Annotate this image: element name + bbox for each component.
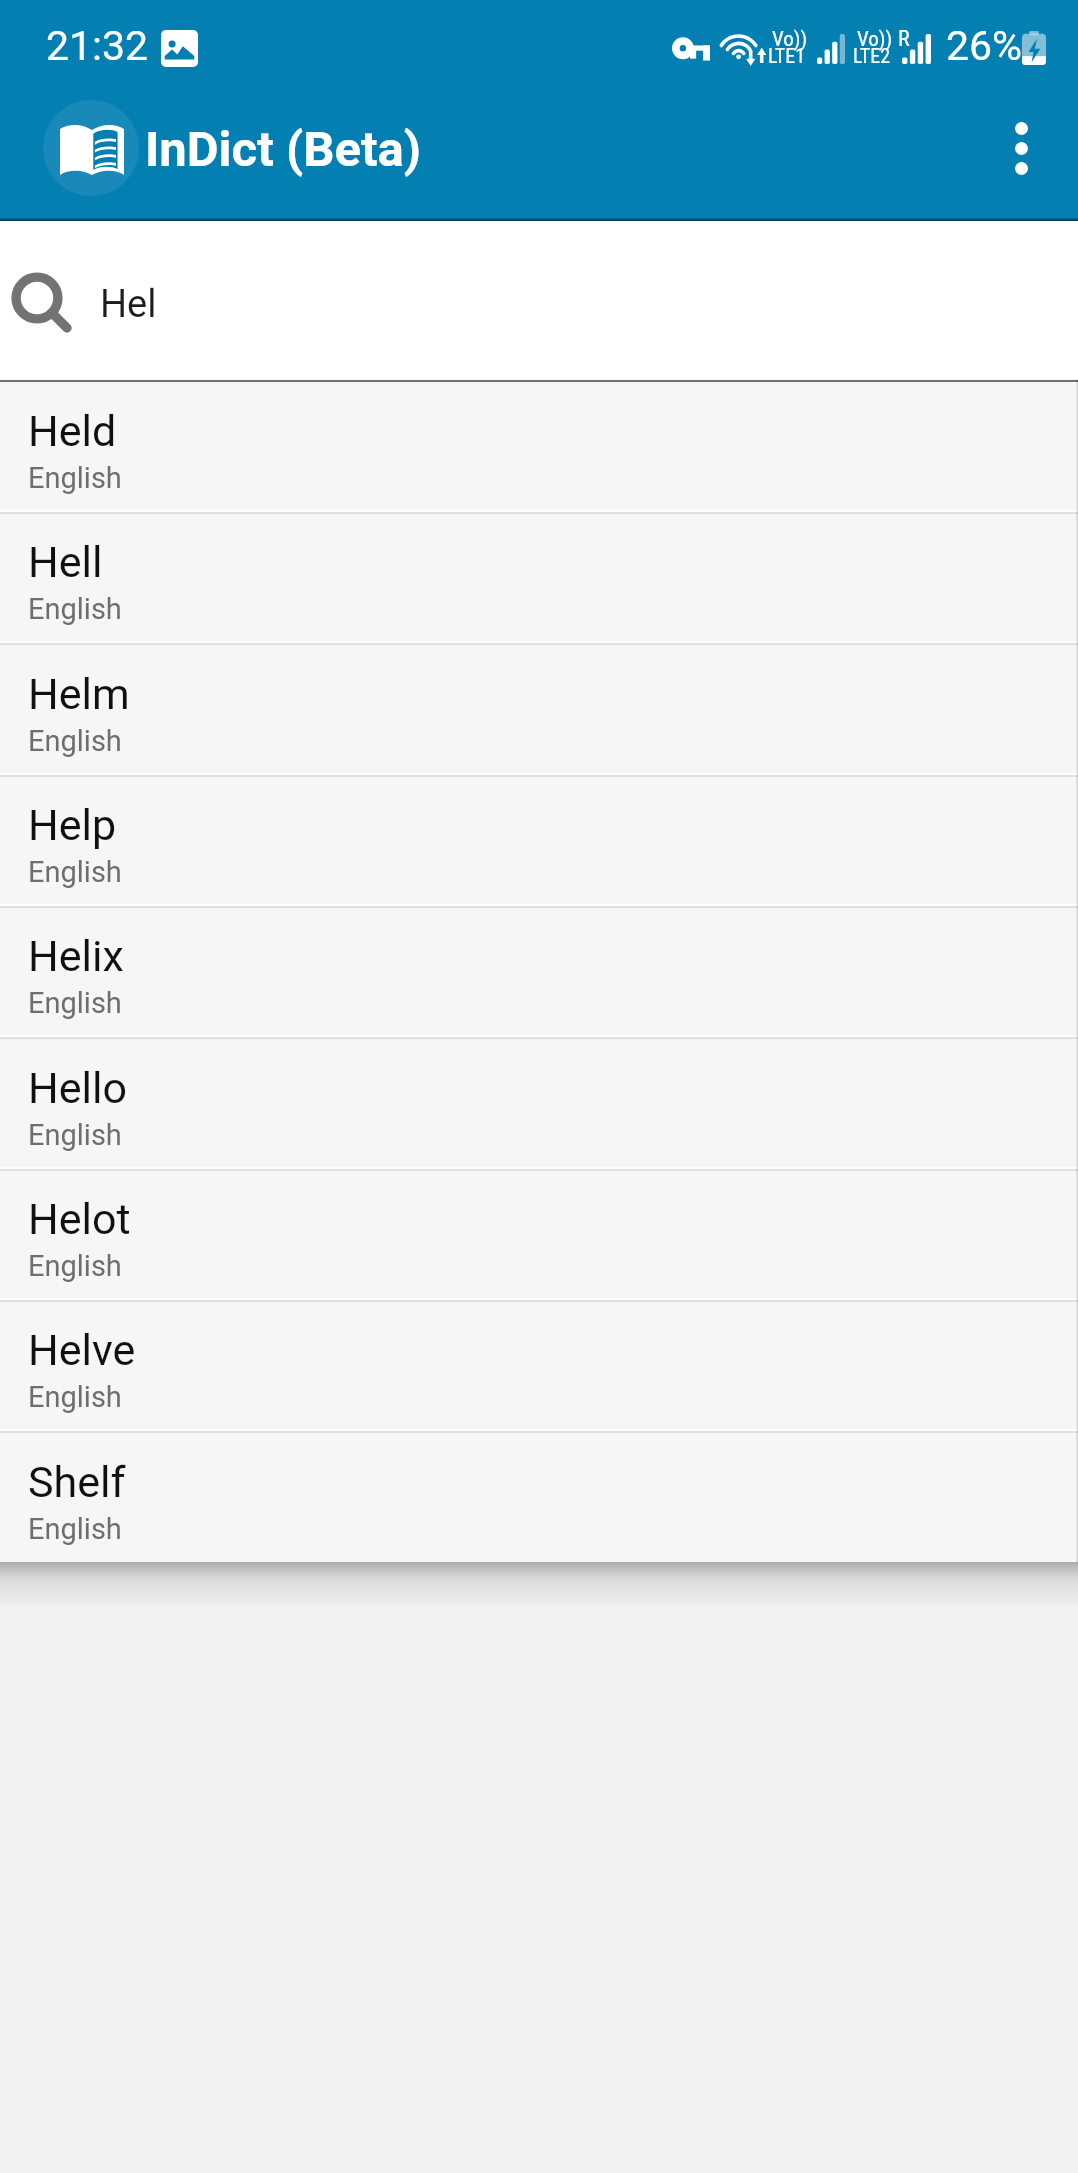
staticText: Held — [28, 406, 117, 456]
button[interactable]: Hell — [0, 513, 1078, 644]
staticText: English — [28, 855, 122, 889]
staticText: Helve — [28, 1325, 136, 1375]
button[interactable]: Helve — [0, 1301, 1078, 1432]
staticText: English — [28, 461, 122, 495]
staticText: LTE1 — [768, 44, 806, 67]
staticText: Helix — [28, 931, 124, 981]
staticText: Helm — [28, 669, 130, 719]
button[interactable]: Search dictionary — [0, 221, 1078, 379]
staticText: R — [898, 26, 910, 52]
button[interactable]: Hello — [0, 1039, 1078, 1170]
button[interactable]: More options — [954, 83, 1078, 213]
staticText: 26% — [946, 22, 1023, 70]
staticText: English — [28, 724, 122, 758]
button[interactable]: Helix — [0, 907, 1078, 1038]
staticText: Vo)) — [772, 27, 808, 52]
button[interactable]: Held — [0, 382, 1078, 513]
staticText: Helot — [28, 1194, 131, 1244]
staticText: Hello — [28, 1063, 127, 1113]
staticText: English — [28, 1512, 122, 1546]
button[interactable]: InDict (Beta) — [145, 121, 422, 178]
button[interactable]: Help — [0, 776, 1078, 907]
staticText: English — [28, 1249, 122, 1283]
staticText: LTE2 — [853, 44, 891, 67]
staticText: English — [28, 592, 122, 626]
staticText: Hel — [100, 282, 157, 327]
staticText: English — [28, 1118, 122, 1152]
staticText: Vo)) — [857, 27, 893, 52]
staticText: 21:32 — [46, 22, 149, 70]
button[interactable]: Helot — [0, 1170, 1078, 1301]
button[interactable]: Helm — [0, 645, 1078, 776]
staticText: English — [28, 1380, 122, 1414]
staticText: Hell — [28, 537, 103, 587]
button[interactable]: Shelf — [0, 1433, 1078, 1564]
staticText: English — [28, 986, 122, 1020]
staticText: Help — [28, 800, 117, 850]
button[interactable]: InDict app icon — [43, 100, 139, 196]
staticText: Shelf — [28, 1457, 126, 1507]
